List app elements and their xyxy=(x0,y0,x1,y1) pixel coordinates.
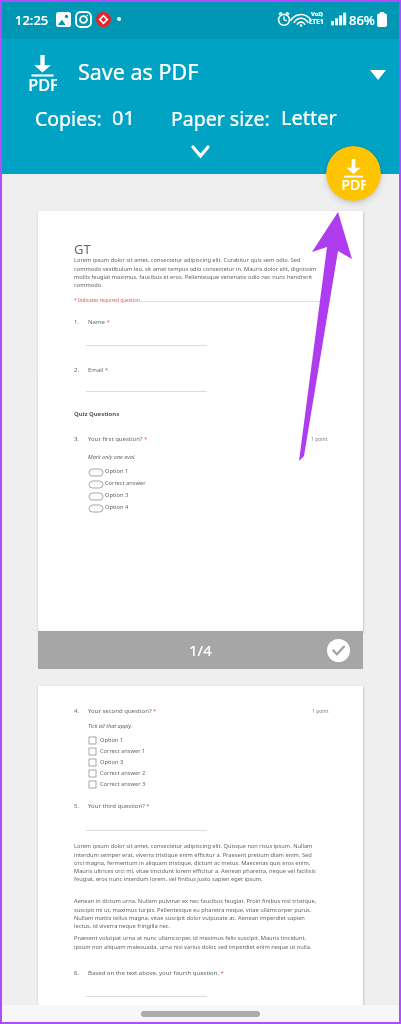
staticText: 1 point xyxy=(311,436,328,443)
staticText: Quiz Questions xyxy=(74,410,120,418)
staticText: 6. xyxy=(74,969,80,977)
staticText: 01 xyxy=(112,104,135,131)
staticText: Your third question? * xyxy=(88,802,150,810)
staticText: GT xyxy=(74,240,91,258)
staticText: Option 3 xyxy=(105,491,129,499)
staticText: 1/4 xyxy=(189,640,212,660)
staticText: 2. xyxy=(74,366,80,374)
staticText: PDF xyxy=(341,175,366,194)
button[interactable]: 4. xyxy=(38,686,363,1005)
staticText: Lorem ipsum dolor sit amet, consectetur … xyxy=(74,256,322,288)
staticText: Name * xyxy=(88,318,110,326)
staticText: 4. xyxy=(74,707,80,715)
staticText: 1 point xyxy=(312,708,329,715)
button[interactable]: 1/4 xyxy=(38,631,363,669)
staticText: Tick all that apply. xyxy=(88,722,133,729)
staticText: Correct answer 3 xyxy=(100,780,146,788)
staticText: 12:25 xyxy=(15,11,49,29)
staticText: Praesent volutpat urna at nunc ullamcorp… xyxy=(74,934,322,950)
staticText: Email * xyxy=(88,366,109,374)
staticText: Your first question? * xyxy=(88,435,148,443)
staticText: Based on the text above, your fourth que… xyxy=(88,969,224,977)
button[interactable]: Change printer xyxy=(359,56,397,94)
staticText: PDF xyxy=(28,74,57,96)
staticText: Mark only one oval. xyxy=(88,453,136,460)
staticText: Your second question? * xyxy=(88,707,157,715)
staticText: Option 1 xyxy=(100,736,124,744)
staticText: Option 4 xyxy=(105,503,129,511)
staticText: 86% xyxy=(349,11,375,29)
staticText: Lorem ipsum dolor sit amet, consectetur … xyxy=(74,842,322,882)
staticText: Letter xyxy=(281,104,337,131)
staticText: Correct answer 1 xyxy=(100,747,146,755)
staticText: LTE1 xyxy=(309,17,324,26)
staticText: 5. xyxy=(74,802,80,810)
button[interactable]: PDF xyxy=(0,39,401,95)
staticText: Option 1 xyxy=(105,467,129,475)
staticText: * Indicates required question xyxy=(74,297,140,304)
staticText: Correct answer 2 xyxy=(100,769,146,777)
staticText: Aenean in dictum urna. Nullam pulvinar e… xyxy=(74,897,322,929)
staticText: Copies: xyxy=(35,105,102,132)
button[interactable]: Show more settings xyxy=(182,133,218,169)
button[interactable]: GT xyxy=(38,211,363,631)
button[interactable]: Save as PDF xyxy=(326,146,381,201)
staticText: Paper size: xyxy=(171,105,270,132)
staticText: Correct answer xyxy=(105,479,146,487)
staticText: 3. xyxy=(74,435,80,443)
staticText: Option 3 xyxy=(100,758,124,766)
staticText: Save as PDF xyxy=(78,57,199,86)
staticText: 1. xyxy=(74,318,80,326)
staticText: VoI) xyxy=(311,10,323,18)
